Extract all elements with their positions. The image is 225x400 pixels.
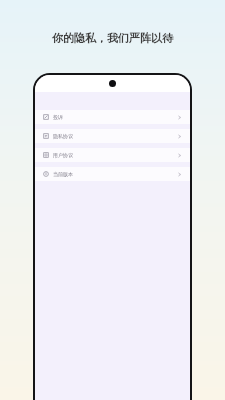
button[interactable]: 投诉: [35, 110, 190, 124]
button[interactable]: 当前版本: [35, 167, 190, 181]
staticText: 你的隐私，我们严阵以待: [52, 31, 173, 45]
other: Open 隐私协议: [177, 134, 182, 139]
button[interactable]: 用户协议: [35, 148, 190, 162]
other: Open 投诉: [177, 115, 182, 120]
staticText: 投诉: [53, 114, 63, 120]
other: Open 用户协议: [177, 153, 182, 158]
button[interactable]: 隐私协议: [35, 129, 190, 143]
staticText: 隐私协议: [53, 133, 73, 139]
staticText: 当前版本: [53, 171, 73, 177]
staticText: 用户协议: [53, 152, 73, 158]
other: Open 当前版本: [177, 172, 182, 177]
